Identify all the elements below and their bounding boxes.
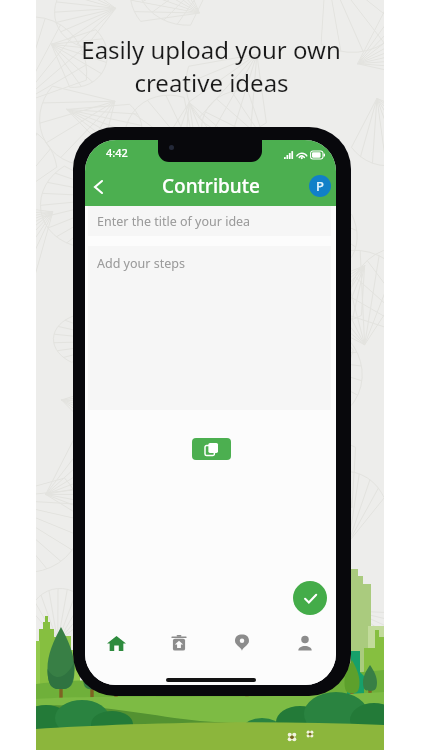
- staticText: Add your steps: [97, 255, 185, 272]
- staticText: Contribute: [162, 173, 260, 199]
- staticText: Enter the title of your idea: [97, 213, 251, 230]
- staticText: P: [316, 177, 324, 195]
- button[interactable]: Places: [210, 626, 273, 660]
- button[interactable]: Add your steps: [88, 246, 331, 410]
- staticText: Easily upload your own: [81, 33, 341, 66]
- staticText: 4:42: [106, 145, 128, 160]
- button[interactable]: Home: [85, 626, 147, 660]
- button[interactable]: Profile: [273, 626, 336, 660]
- button[interactable]: Enter the title of your idea: [88, 206, 331, 236]
- button[interactable]: Profile: [309, 175, 331, 197]
- button[interactable]: Trash: [147, 626, 210, 660]
- button[interactable]: Save: [293, 581, 327, 615]
- button[interactable]: Back: [85, 171, 112, 203]
- button[interactable]: Add image: [192, 438, 231, 460]
- staticText: creative ideas: [134, 66, 289, 99]
